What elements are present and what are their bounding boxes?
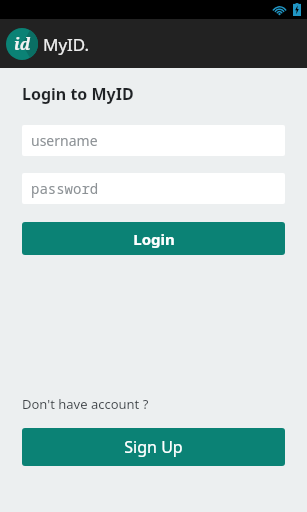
button[interactable]: password xyxy=(22,173,285,204)
staticText: username xyxy=(31,131,98,150)
button[interactable]: Sign Up xyxy=(22,428,285,466)
staticText: password xyxy=(31,179,99,198)
staticText: Login xyxy=(133,229,175,249)
button[interactable]: Login xyxy=(22,222,285,255)
button[interactable]: username xyxy=(22,125,285,156)
staticText: id xyxy=(14,33,31,55)
staticText: Don't have account ? xyxy=(22,395,149,413)
staticText: Sign Up xyxy=(124,436,183,458)
staticText: MyID. xyxy=(43,33,90,56)
staticText: Login to MyID xyxy=(22,83,134,105)
